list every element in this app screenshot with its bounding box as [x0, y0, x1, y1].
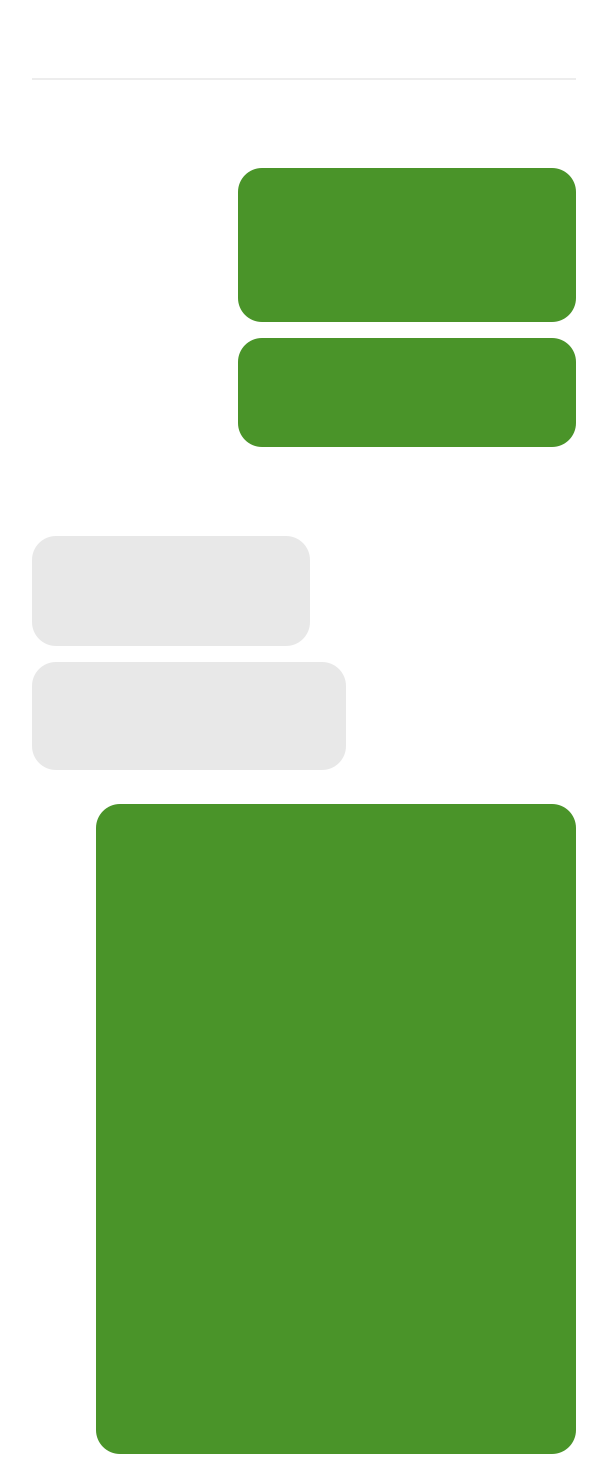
- button[interactable]: Photo attachment you sent: [96, 804, 576, 1454]
- button[interactable]: Message you sent: [238, 338, 576, 447]
- button[interactable]: Message you sent: [238, 168, 576, 322]
